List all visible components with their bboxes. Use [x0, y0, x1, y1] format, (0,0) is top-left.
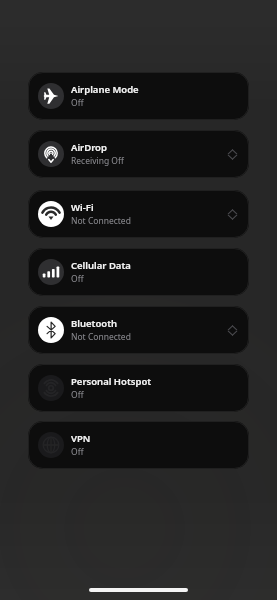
button[interactable]: Cellular Data [28, 248, 249, 296]
staticText: Bluetooth [71, 317, 118, 330]
staticText: Not Connected [71, 331, 131, 343]
staticText: Off [71, 446, 84, 458]
staticText: Personal Hotspot [71, 375, 152, 388]
staticText: Off [71, 273, 84, 285]
button[interactable]: Wi-Fi [28, 190, 249, 238]
other: Expand [226, 148, 239, 161]
staticText: Off [71, 389, 84, 401]
button[interactable]: Airplane Mode [28, 72, 249, 120]
staticText: Airplane Mode [71, 83, 139, 96]
staticText: Cellular Data [71, 259, 131, 272]
button[interactable]: AirDrop [28, 130, 249, 178]
staticText: Wi-Fi [71, 201, 94, 214]
button[interactable]: VPN [28, 421, 249, 469]
button[interactable]: Bluetooth [28, 306, 249, 354]
staticText: VPN [71, 432, 91, 445]
other: Expand [226, 324, 239, 337]
staticText: Off [71, 97, 84, 109]
staticText: Receiving Off [71, 155, 124, 167]
staticText: AirDrop [71, 141, 107, 154]
other: Expand [226, 208, 239, 221]
staticText: Not Connected [71, 215, 131, 227]
button[interactable]: Personal Hotspot [28, 364, 249, 412]
